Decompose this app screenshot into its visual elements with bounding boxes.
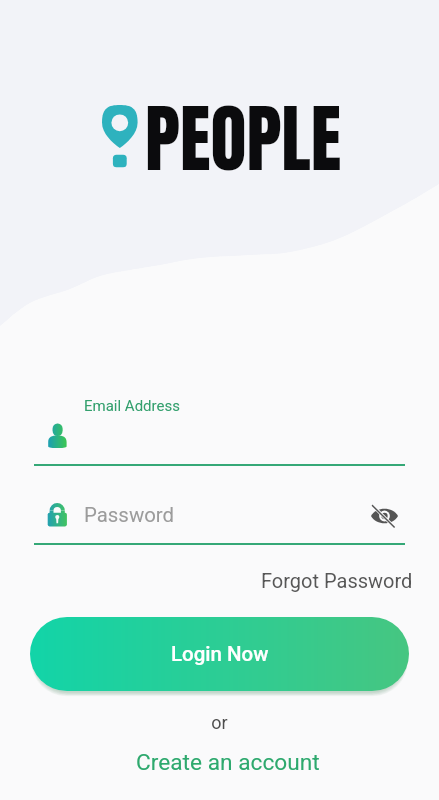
- button[interactable]: Create an account: [126, 744, 330, 781]
- button[interactable]: Password: [34, 496, 405, 545]
- staticText: Email Address: [84, 397, 180, 415]
- staticText: Forgot Password: [261, 569, 413, 592]
- staticText: or: [0, 712, 439, 733]
- staticText: Login Now: [171, 642, 269, 666]
- button[interactable]: Login Now: [30, 617, 409, 691]
- button[interactable]: Email Address field: [34, 409, 405, 466]
- button[interactable]: Show password: [359, 493, 409, 539]
- staticText: PEOPLE: [145, 83, 342, 194]
- staticText: Password: [84, 503, 175, 527]
- staticText: Create an account: [136, 749, 320, 776]
- button[interactable]: Forgot Password: [253, 564, 421, 597]
